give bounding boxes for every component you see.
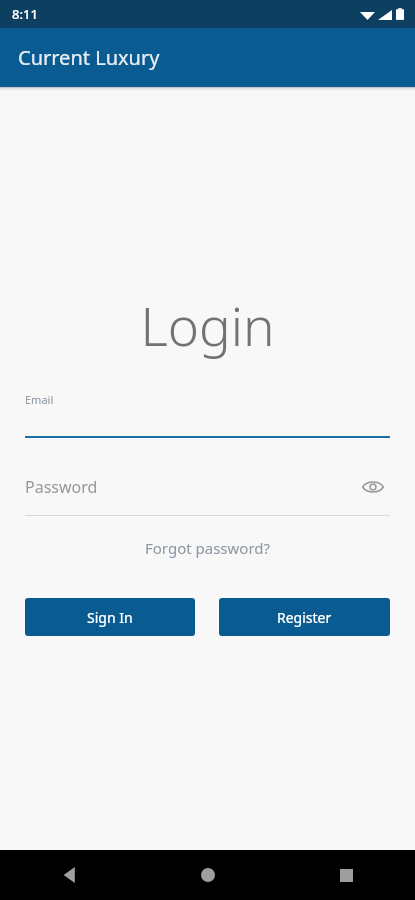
staticText: Email <box>25 392 54 407</box>
staticText: Register <box>277 608 332 627</box>
button[interactable]: Sign In <box>25 598 195 636</box>
button[interactable]: Forgot password? <box>137 535 279 561</box>
staticText: 8:11 <box>12 5 38 23</box>
button[interactable]: Home <box>139 850 277 900</box>
staticText: Login <box>0 289 415 361</box>
button[interactable]: Password <box>25 470 390 504</box>
button[interactable]: Show password <box>356 470 390 504</box>
staticText: Password <box>25 476 356 498</box>
staticText: Forgot password? <box>145 538 271 558</box>
staticText: Sign In <box>87 608 133 627</box>
staticText: Current Luxury <box>18 44 160 71</box>
button[interactable]: Recents <box>277 850 415 900</box>
button[interactable]: Email <box>25 392 390 438</box>
button[interactable]: Back <box>0 850 139 900</box>
button[interactable]: Register <box>219 598 390 636</box>
